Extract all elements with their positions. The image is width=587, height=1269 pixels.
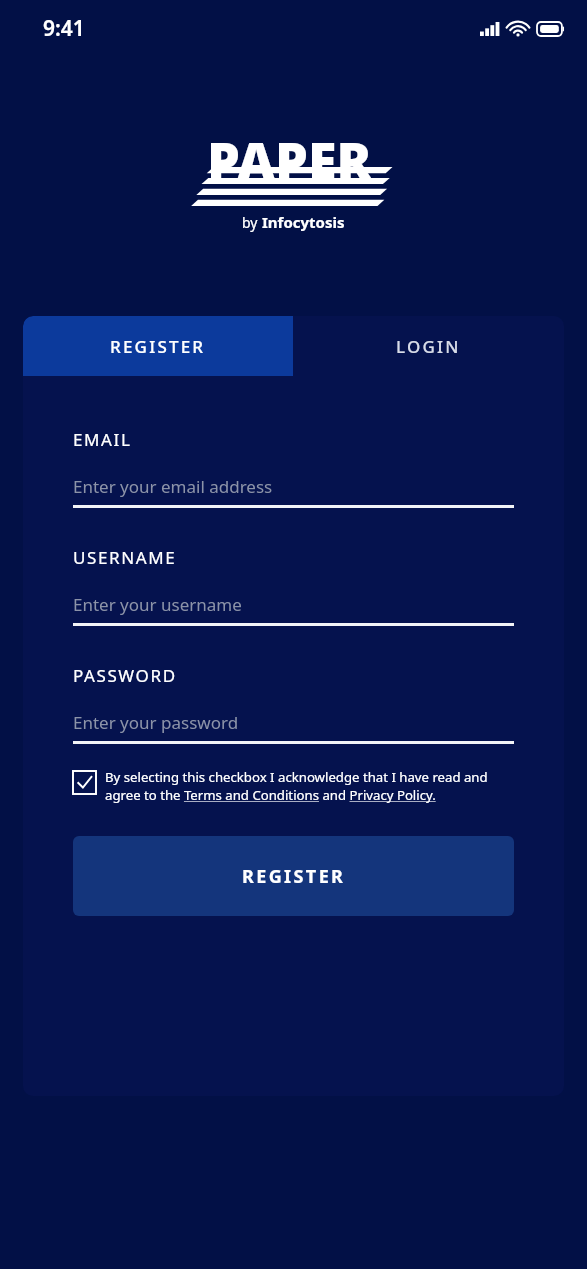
staticText: Enter your email address — [73, 475, 273, 498]
staticText: Enter your username — [73, 593, 242, 616]
button[interactable]: Accept terms checkbox — [73, 768, 514, 804]
staticText: by — [242, 213, 262, 232]
button[interactable]: Enter your username — [73, 593, 514, 626]
staticText: Infocytosis — [262, 212, 345, 232]
button[interactable]: Enter your email address — [73, 475, 514, 508]
staticText: Enter your password — [73, 711, 239, 734]
staticText: 9:41 — [43, 14, 85, 43]
staticText: PASSWORD — [73, 664, 177, 687]
staticText: EMAIL — [73, 428, 132, 451]
staticText: USERNAME — [73, 546, 177, 569]
button[interactable]: LOGIN — [293, 316, 564, 376]
button[interactable]: Enter your password — [73, 711, 514, 744]
staticText: REGISTER — [242, 864, 346, 889]
staticText: PAPER — [207, 124, 372, 195]
other: Accept terms checkbox — [73, 771, 96, 794]
button[interactable]: REGISTER — [73, 836, 514, 916]
button[interactable]: REGISTER — [23, 316, 293, 376]
staticText: REGISTER — [110, 335, 206, 358]
staticText: By selecting this checkbox I acknowledge… — [105, 768, 514, 804]
staticText: LOGIN — [396, 335, 461, 358]
